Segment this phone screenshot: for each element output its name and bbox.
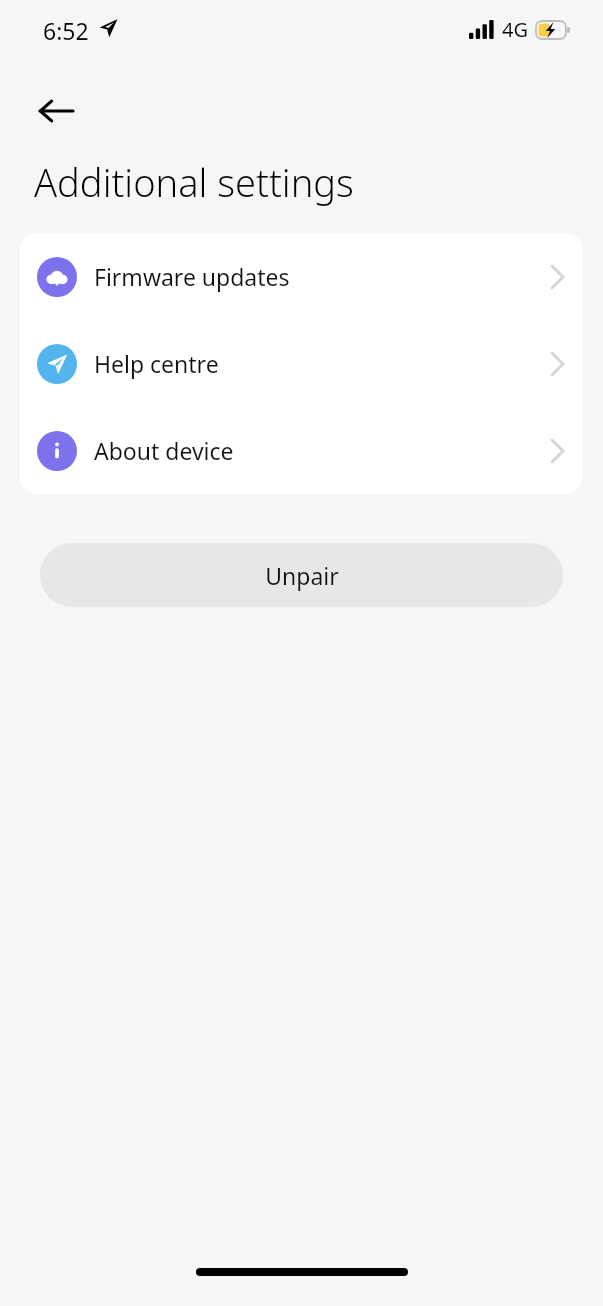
button[interactable]: Firmware updates	[20, 233, 583, 320]
button[interactable]: Back	[26, 86, 86, 136]
staticText: Additional settings	[34, 156, 354, 208]
staticText: 6:52	[43, 15, 89, 46]
staticText: Firmware updates	[94, 261, 290, 292]
staticText: About device	[94, 435, 234, 466]
button[interactable]: About device	[20, 407, 583, 494]
staticText: 4G	[502, 16, 528, 43]
staticText: Help centre	[94, 348, 219, 379]
staticText: Unpair	[265, 560, 339, 591]
button[interactable]: Unpair	[40, 543, 563, 607]
button[interactable]: Help centre	[20, 320, 583, 407]
